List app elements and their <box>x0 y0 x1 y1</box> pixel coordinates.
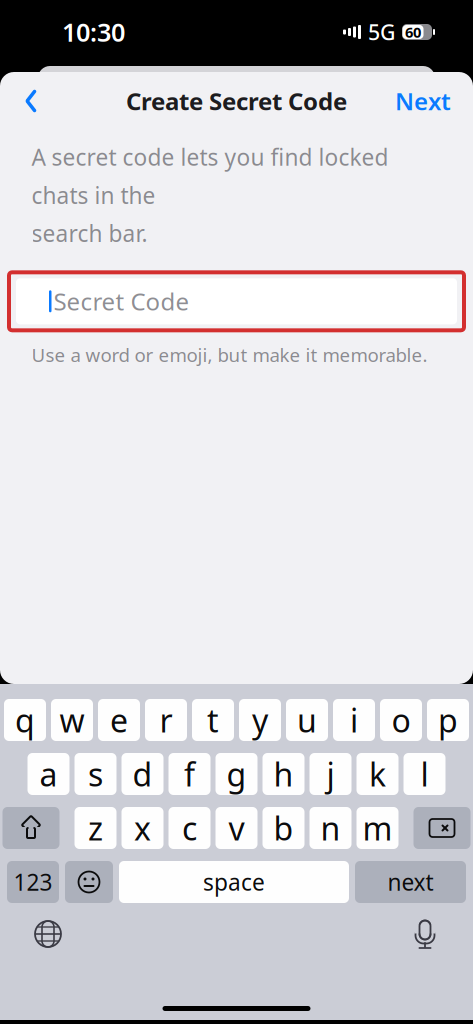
button[interactable]: g <box>215 753 257 795</box>
button[interactable]: m <box>356 807 398 849</box>
button[interactable]: Next <box>385 79 461 123</box>
staticText: n <box>320 807 340 849</box>
button[interactable]: v <box>215 807 257 849</box>
button[interactable]: z <box>74 807 116 849</box>
button[interactable]: space <box>119 861 349 903</box>
button[interactable]: c <box>168 807 210 849</box>
staticText: r <box>159 699 172 741</box>
staticText: h <box>273 753 293 795</box>
button[interactable]: p <box>427 699 469 741</box>
staticText: e <box>110 699 128 741</box>
staticText: next <box>387 867 433 897</box>
button[interactable]: w <box>51 699 93 741</box>
button[interactable]: j <box>309 753 351 795</box>
staticText: g <box>226 753 246 795</box>
staticText: b <box>273 807 293 849</box>
button[interactable]: i <box>333 699 375 741</box>
button[interactable]: Shift <box>2 807 59 849</box>
staticText: p <box>438 699 458 741</box>
staticText: v <box>228 807 244 849</box>
button[interactable]: o <box>380 699 422 741</box>
staticText: Next <box>395 85 451 117</box>
button[interactable]: Emoji <box>65 861 113 903</box>
staticText: 123 <box>13 867 52 897</box>
button[interactable]: n <box>309 807 351 849</box>
staticText: Use a word or emoji, but make it memorab… <box>31 342 427 367</box>
button[interactable]: l <box>403 753 445 795</box>
staticText: f <box>184 753 195 795</box>
staticText: space <box>203 867 265 897</box>
button[interactable]: r <box>145 699 187 741</box>
button[interactable]: f <box>168 753 210 795</box>
staticText: x <box>134 807 151 849</box>
staticText: i <box>350 699 358 741</box>
staticText: q <box>15 699 35 741</box>
button[interactable]: e <box>98 699 140 741</box>
button[interactable]: b <box>262 807 304 849</box>
staticText: o <box>391 699 410 741</box>
staticText: l <box>420 753 428 795</box>
button[interactable]: Delete <box>413 807 470 849</box>
staticText: u <box>297 699 317 741</box>
staticText: s <box>88 753 103 795</box>
button[interactable]: 123 <box>7 861 59 903</box>
button[interactable]: y <box>239 699 281 741</box>
button[interactable]: t <box>192 699 234 741</box>
staticText: a <box>39 753 57 795</box>
button[interactable]: x <box>121 807 163 849</box>
staticText: Secret Code <box>53 285 189 317</box>
staticText: w <box>59 699 84 741</box>
button[interactable]: h <box>262 753 304 795</box>
button[interactable]: Back <box>8 79 54 123</box>
button[interactable]: d <box>121 753 163 795</box>
button[interactable]: k <box>356 753 398 795</box>
button[interactable]: s <box>74 753 116 795</box>
button[interactable]: u <box>286 699 328 741</box>
staticText: 5G <box>368 18 396 46</box>
staticText: z <box>88 807 103 849</box>
staticText: j <box>326 753 334 795</box>
staticText: d <box>132 753 152 795</box>
button[interactable]: q <box>4 699 46 741</box>
button[interactable]: Next keyboard <box>33 919 63 949</box>
staticText: m <box>362 807 392 849</box>
staticText: Create Secret Code <box>126 85 347 117</box>
staticText: c <box>182 807 197 849</box>
staticText: y <box>252 699 268 741</box>
button[interactable]: a <box>27 753 69 795</box>
button[interactable]: Dictation <box>410 917 440 951</box>
staticText: 60 <box>405 22 421 42</box>
staticText: k <box>369 753 386 795</box>
staticText: 10:30 <box>62 15 125 49</box>
staticText: A secret code lets you find locked chats… <box>31 142 388 248</box>
button[interactable]: next <box>355 861 466 903</box>
staticText: t <box>207 699 219 741</box>
